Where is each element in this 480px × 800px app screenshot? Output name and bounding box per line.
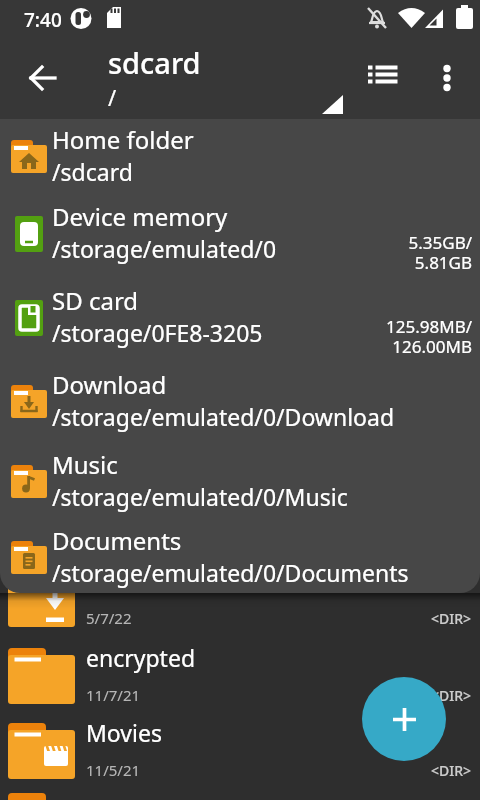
staticText: <DIR> <box>431 761 472 780</box>
staticText: 11/7/21 <box>86 685 141 705</box>
staticText: /sdcard <box>52 156 133 187</box>
button[interactable] <box>0 640 480 713</box>
staticText: /storage/emulated/0/Documents <box>52 557 409 588</box>
staticText: 5.35GB/ 5.81GB <box>408 231 472 274</box>
button[interactable] <box>29 64 57 92</box>
button[interactable]: sdcard <box>108 43 201 112</box>
staticText: <DIR> <box>431 686 472 705</box>
staticText: SD card <box>52 284 139 317</box>
staticText: Movies <box>86 717 162 748</box>
staticText: Download <box>52 368 167 401</box>
staticText: /storage/emulated/0/Music <box>52 481 348 512</box>
staticText: Download <box>86 565 196 596</box>
staticText: encrypted <box>86 642 196 673</box>
staticText: /storage/0FE8-3205 <box>52 317 263 348</box>
staticText: 5/7/22 <box>86 608 132 628</box>
staticText: 7:40 <box>24 7 62 33</box>
button[interactable]: Music <box>0 444 480 520</box>
button[interactable] <box>362 677 446 761</box>
staticText: Documents <box>52 524 182 557</box>
button[interactable]: Documents <box>0 520 480 593</box>
staticText: 125.98MB/ 126.00MB <box>386 315 472 358</box>
staticText: /storage/emulated/0 <box>52 233 277 264</box>
staticText: Home folder <box>52 123 194 156</box>
staticText: Music <box>52 448 118 481</box>
button[interactable]: Device memory <box>0 196 480 280</box>
button[interactable] <box>435 61 459 93</box>
staticText: <DIR> <box>431 609 472 628</box>
button[interactable] <box>366 63 400 87</box>
staticText: 11/5/21 <box>86 760 141 780</box>
staticText: Device memory <box>52 200 228 233</box>
button[interactable] <box>0 715 480 788</box>
staticText: sdcard <box>108 43 201 82</box>
button[interactable]: SD card <box>0 280 480 364</box>
button[interactable]: Download <box>0 364 480 444</box>
button[interactable] <box>0 563 480 636</box>
button[interactable] <box>0 785 480 800</box>
staticText: /storage/emulated/0/Download <box>52 401 395 432</box>
staticText: / <box>108 82 117 112</box>
button[interactable]: Home folder <box>0 119 480 196</box>
